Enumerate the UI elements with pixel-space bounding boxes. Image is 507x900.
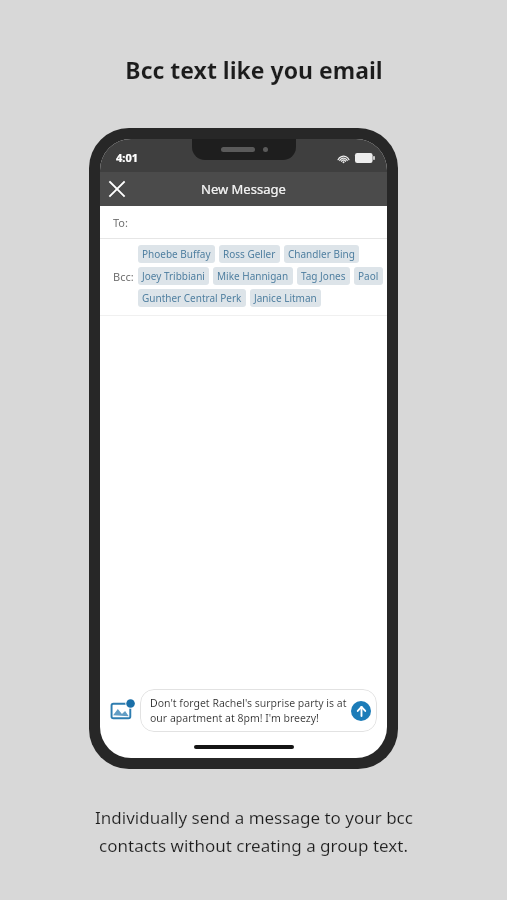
button[interactable]: Ross Geller: [219, 245, 280, 263]
button[interactable]: Mike Hannigan: [213, 267, 293, 285]
button[interactable]: Attach photo: [108, 696, 138, 726]
button[interactable]: Phoebe Buffay: [138, 245, 215, 263]
button[interactable]: Paolo: [354, 267, 383, 285]
staticText: New Message: [201, 180, 286, 198]
staticText: Phoebe Buffay: [142, 247, 211, 261]
staticText: 4:01: [116, 150, 138, 165]
button[interactable]: Gunther Central Perk: [138, 289, 246, 307]
staticText: Chandler Bing: [288, 247, 355, 261]
staticText: Gunther Central Perk: [142, 291, 242, 305]
staticText: Janice Litman: [254, 291, 317, 305]
button[interactable]: Janice Litman: [250, 289, 321, 307]
button[interactable]: Close: [100, 172, 134, 206]
button[interactable]: Send: [351, 701, 371, 721]
button[interactable]: Don't forget Rachel's surprise party is …: [140, 689, 377, 732]
button[interactable]: Tag Jones: [297, 267, 350, 285]
staticText: Mike Hannigan: [217, 269, 289, 283]
staticText: contacts without creating a group text.: [99, 834, 408, 857]
staticText: Ross Geller: [223, 247, 276, 261]
staticText: Paolo: [358, 269, 379, 283]
button[interactable]: Bcc:: [100, 245, 387, 307]
staticText: To:: [113, 215, 128, 230]
staticText: Don't forget Rachel's surprise party is …: [150, 696, 347, 725]
staticText: Bcc:: [113, 269, 134, 284]
button[interactable]: Chandler Bing: [284, 245, 359, 263]
staticText: Tag Jones: [301, 269, 346, 283]
button[interactable]: Joey Tribbiani: [138, 267, 209, 285]
staticText: Individually send a message to your bcc: [95, 806, 413, 829]
button[interactable]: To:: [100, 206, 387, 238]
staticText: Joey Tribbiani: [142, 269, 205, 283]
staticText: Bcc text like you email: [125, 54, 383, 85]
